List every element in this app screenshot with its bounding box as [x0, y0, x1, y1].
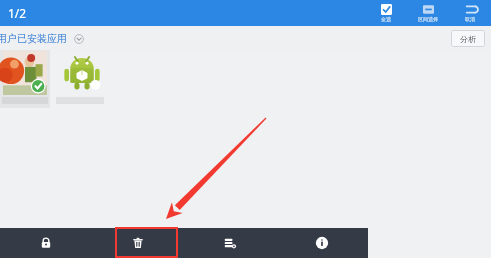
button[interactable]: Delete	[92, 228, 184, 258]
button[interactable]: 分析	[451, 30, 485, 47]
staticText: 全选	[381, 16, 391, 22]
staticText: 分析	[460, 34, 476, 44]
button[interactable]: Info	[276, 228, 368, 258]
button[interactable]: Android app	[56, 50, 108, 108]
staticText: 区间选择	[418, 16, 438, 22]
button[interactable]: Cancel	[449, 0, 491, 26]
button[interactable]: Select all	[365, 0, 407, 26]
button[interactable]: 用户已安装应用	[0, 32, 84, 45]
staticText: 1/2	[8, 5, 27, 21]
button[interactable]: Lock	[0, 228, 92, 258]
staticText: 取消	[465, 16, 475, 22]
staticText: 用户已安装应用	[0, 32, 67, 45]
button[interactable]: Backup	[184, 228, 276, 258]
button[interactable]: Game app, selected	[0, 50, 50, 108]
button[interactable]: Range select	[407, 0, 449, 26]
